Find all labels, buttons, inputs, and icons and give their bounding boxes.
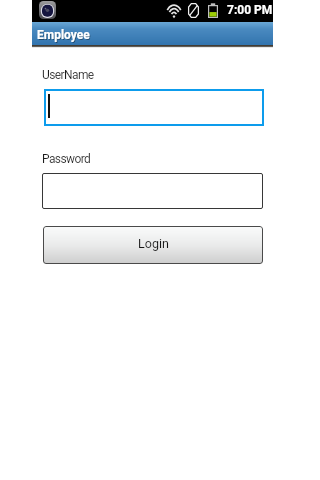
button[interactable] xyxy=(42,173,263,209)
staticText: Employee xyxy=(38,29,91,43)
staticText: Login xyxy=(138,236,169,251)
staticText: Employee xyxy=(37,28,90,42)
staticText: UserName xyxy=(42,68,94,82)
staticText: Password xyxy=(42,152,91,166)
button[interactable]: Login xyxy=(43,226,263,264)
button[interactable] xyxy=(44,89,264,126)
other: Notification xyxy=(39,1,56,19)
staticText: 7:00 PM xyxy=(227,3,273,17)
